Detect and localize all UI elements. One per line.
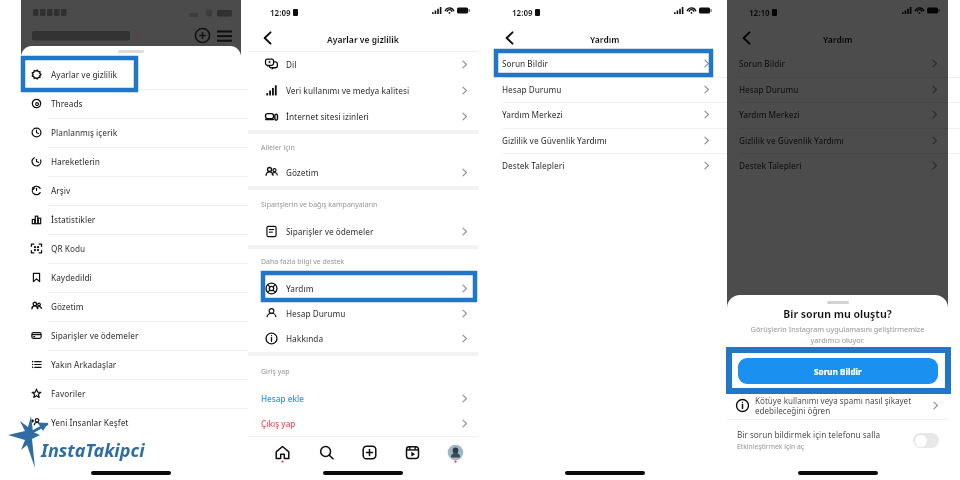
staticText: Planlanmış içerik: [51, 127, 118, 138]
staticText: Veri kullanımı ve medya kalitesi: [286, 85, 410, 96]
staticText: Yardım: [823, 34, 853, 45]
staticText: Siparişler ve ödemeler: [51, 330, 139, 341]
button[interactable]: Threads: [21, 89, 241, 118]
button[interactable]: Siparişler ve ödemeler: [21, 321, 241, 350]
staticText: Hesap Durumu: [286, 308, 346, 319]
staticText: Yardım Merkezi: [739, 109, 800, 120]
staticText: Çıkış yap: [261, 418, 296, 429]
button[interactable]: Favoriler: [21, 379, 241, 408]
staticText: İnternet sitesi izinleri: [286, 111, 369, 122]
staticText: Gizlilik ve Güvenlik Yardımı: [739, 135, 844, 146]
button[interactable]: Yardım Merkezi: [727, 102, 948, 127]
staticText: InstaTakipci: [41, 438, 145, 463]
button[interactable]: Kötüye kullanımı veya spamı nasıl şikaye…: [727, 389, 948, 421]
staticText: Yeni İnsanlar Keşfet: [51, 417, 129, 428]
button[interactable]: Dil: [248, 52, 478, 77]
staticText: Giriş yap: [261, 367, 290, 377]
staticText: 12:09: [512, 7, 533, 18]
button[interactable]: Sorun Bildir: [490, 51, 720, 76]
button[interactable]: Sorun Bildir: [738, 358, 938, 384]
staticText: Favoriler: [51, 388, 86, 399]
staticText: Gözetim: [286, 167, 319, 178]
staticText: Hareketlerin: [51, 156, 100, 167]
button[interactable]: İstatistikler: [21, 205, 241, 234]
button[interactable]: Arşiv: [21, 176, 241, 205]
other: Back: [503, 31, 517, 45]
button[interactable]: Bir sorun bildirmek için telefonu salla: [727, 423, 948, 457]
button[interactable]: QR Kodu: [21, 234, 241, 263]
other: Back: [261, 31, 275, 45]
staticText: Kaydedildi: [51, 272, 92, 283]
staticText: Yakın Arkadaşlar: [51, 359, 117, 370]
staticText: Gözetim: [51, 301, 84, 312]
staticText: Ayarlar ve gizlilik: [327, 34, 399, 45]
staticText: Ayarlar ve gizlilik: [51, 69, 118, 80]
button[interactable]: Hakkında: [248, 326, 478, 351]
button[interactable]: Yardım: [248, 276, 478, 301]
staticText: Destek Talepleri: [502, 160, 565, 171]
staticText: Yardım: [590, 34, 620, 45]
staticText: Etkinleştirmek için aç: [737, 442, 805, 451]
button[interactable]: Back: [499, 27, 521, 49]
staticText: Dil: [286, 59, 297, 70]
staticText: Daha fazla bilgi ve destek: [261, 257, 345, 267]
button[interactable]: Yeni İnsanlar Keşfet: [21, 408, 241, 437]
button[interactable]: Yakın Arkadaşlar: [21, 350, 241, 379]
staticText: Hesap Durumu: [739, 84, 799, 95]
button[interactable]: Destek Talepleri: [490, 153, 720, 178]
staticText: Sorun Bildir: [814, 366, 862, 377]
staticText: Hesap ekle: [261, 393, 304, 404]
staticText: 12:09: [270, 7, 291, 18]
button[interactable]: Hesap Durumu: [490, 77, 720, 102]
button[interactable]: Hesap ekle: [248, 386, 478, 411]
button[interactable]: Destek Talepleri: [727, 153, 948, 178]
button[interactable]: Gözetim: [21, 292, 241, 321]
button[interactable]: Reels: [391, 437, 434, 467]
staticText: Aileler için: [261, 143, 295, 153]
button[interactable]: Create: [348, 437, 391, 467]
button[interactable]: Gizlilik ve Güvenlik Yardımı: [727, 128, 948, 153]
staticText: QR Kodu: [51, 243, 86, 254]
staticText: Sorun Bildir: [502, 58, 548, 69]
button[interactable]: Sorun Bildir: [727, 51, 948, 76]
button[interactable]: Hesap Durumu: [727, 77, 948, 102]
button[interactable]: İnternet sitesi izinleri: [248, 104, 478, 129]
button[interactable]: Çıkış yap: [248, 411, 478, 436]
staticText: Bir sorun mu oluştu?: [727, 307, 948, 321]
button[interactable]: Gözetim: [248, 160, 478, 185]
button[interactable]: Search: [304, 437, 348, 467]
button[interactable]: Yardım Merkezi: [490, 102, 720, 127]
staticText: Yardım: [286, 283, 314, 294]
button[interactable]: Planlanmış içerik: [21, 118, 241, 147]
button[interactable]: Veri kullanımı ve medya kalitesi: [248, 78, 478, 103]
staticText: Siparişlerin ve bağış kampanyaların: [261, 200, 378, 210]
button[interactable]: Back: [736, 27, 758, 49]
button[interactable]: Ayarlar ve gizlilik: [21, 60, 241, 89]
staticText: Hesap Durumu: [502, 84, 562, 95]
button[interactable]: Hareketlerin: [21, 147, 241, 176]
staticText: Bir sorun bildirmek için telefonu salla: [737, 429, 881, 440]
staticText: Kötüye kullanımı veya spamı nasıl şikaye…: [755, 395, 931, 416]
button[interactable]: Profile: [434, 437, 477, 467]
staticText: Görüşlerin Instagram uygulamasını gelişt…: [727, 324, 948, 345]
button[interactable]: Siparişler ve ödemeler: [248, 219, 478, 244]
staticText: Siparişler ve ödemeler: [286, 226, 374, 237]
button[interactable]: Hesap Durumu: [248, 301, 478, 326]
button[interactable]: Home: [260, 437, 304, 467]
staticText: İstatistikler: [51, 214, 96, 225]
staticText: Sorun Bildir: [739, 58, 785, 69]
button[interactable]: Menu: [217, 30, 232, 41]
other: Back: [740, 31, 754, 45]
staticText: Threads: [51, 98, 83, 109]
staticText: Hakkında: [286, 333, 324, 344]
button[interactable]: Back: [257, 27, 279, 49]
staticText: Destek Talepleri: [739, 160, 802, 171]
staticText: Yardım Merkezi: [502, 109, 563, 120]
button[interactable]: New post: [195, 28, 210, 43]
button[interactable]: Gizlilik ve Güvenlik Yardımı: [490, 128, 720, 153]
staticText: Arşiv: [51, 185, 71, 196]
staticText: Gizlilik ve Güvenlik Yardımı: [502, 135, 607, 146]
staticText: 12:10: [749, 7, 770, 18]
button[interactable]: Kaydedildi: [21, 263, 241, 292]
